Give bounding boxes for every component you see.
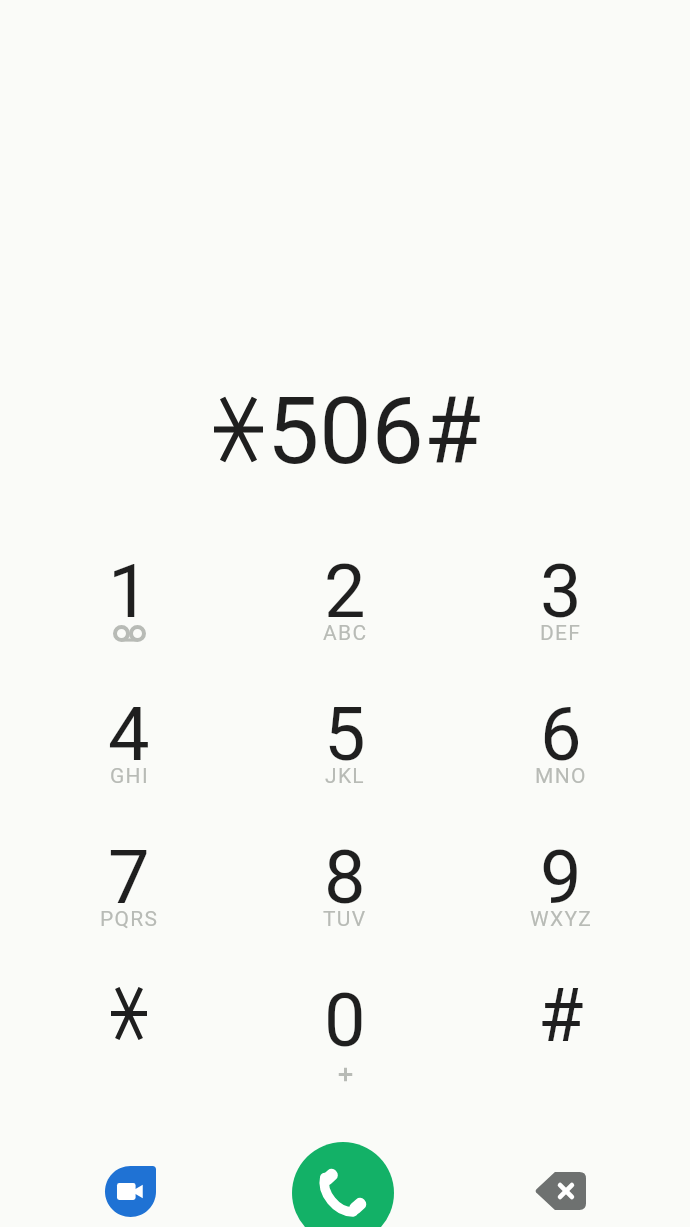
staticText: 0 — [324, 977, 366, 1059]
button[interactable]: 2 — [237, 548, 453, 691]
button[interactable] — [21, 977, 237, 1120]
staticText: DEF — [540, 621, 582, 646]
button[interactable]: 8 — [237, 834, 453, 977]
staticText: 506# — [267, 377, 482, 486]
staticText: TUV — [323, 907, 367, 932]
staticText: 1 — [108, 548, 150, 630]
button[interactable]: Call — [292, 1142, 394, 1227]
staticText: WXYZ — [530, 907, 593, 932]
staticText: ABC — [323, 621, 368, 646]
button[interactable]: 5 — [237, 691, 453, 834]
staticText: 4 — [108, 691, 150, 773]
button[interactable]: 6 — [453, 691, 669, 834]
staticText: GHI — [110, 764, 149, 789]
staticText: 5 — [324, 691, 366, 773]
button[interactable]: 1 — [21, 548, 237, 691]
button[interactable]: 3 — [453, 548, 669, 691]
staticText: 7 — [108, 834, 150, 916]
button[interactable]: Backspace — [518, 1149, 602, 1227]
staticText: 2 — [324, 548, 366, 630]
staticText: PQRS — [100, 907, 159, 932]
staticText: 9 — [540, 834, 582, 916]
staticText: 3 — [540, 548, 582, 630]
staticText: # — [538, 972, 584, 1054]
staticText: 8 — [324, 834, 366, 916]
button[interactable]: 7 — [21, 834, 237, 977]
staticText: 6 — [540, 691, 582, 773]
button[interactable]: Video call — [89, 1150, 171, 1227]
button[interactable]: 0 — [237, 977, 453, 1120]
button[interactable]: # — [453, 977, 669, 1120]
staticText: MNO — [535, 764, 587, 789]
button[interactable]: 9 — [453, 834, 669, 977]
staticText: JKL — [325, 764, 365, 789]
button[interactable]: 4 — [21, 691, 237, 834]
